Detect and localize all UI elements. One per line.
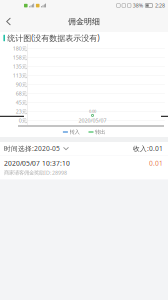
button[interactable]: 返回 [0, 12, 23, 31]
staticText: 180元 [13, 45, 27, 52]
staticText: 佣金明细 [68, 17, 100, 26]
staticText: 23元 [16, 108, 27, 115]
staticText: 45元 [16, 99, 27, 106]
staticText: 转入 [69, 129, 79, 135]
staticText: 113元 [13, 72, 27, 79]
staticText: 统计图(没有数据表示没有) [7, 33, 99, 43]
staticText: 0.01 [149, 159, 163, 168]
staticText: 90元 [16, 81, 27, 88]
staticText: 2020/05/07 [78, 117, 106, 124]
button[interactable]: 2020/05/07 10:37:10 [0, 155, 168, 179]
staticText: 0.00 [89, 109, 96, 114]
staticText: 68元 [16, 90, 27, 97]
staticText: 2020/05/07 10:37:10 [4, 159, 70, 168]
staticText: 时间选择:2020-05 [4, 144, 60, 153]
staticText: 38% [133, 2, 143, 9]
staticText: 158元 [13, 54, 27, 61]
staticText: 2:28 [155, 2, 165, 9]
staticText: 收入:0.01 [133, 144, 163, 153]
staticText: 0元 [19, 117, 27, 124]
staticText: 转出 [95, 129, 105, 135]
staticText: 商家请客佣金奖励ID: 28998 [4, 169, 67, 176]
button[interactable]: 时间选择:2020-05 [0, 142, 73, 155]
staticText: 135元 [13, 63, 27, 70]
